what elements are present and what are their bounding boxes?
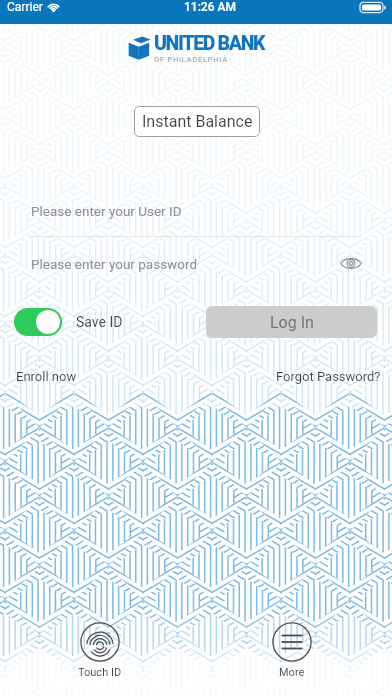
button[interactable]: More — [268, 622, 316, 679]
staticText: Instant Balance — [142, 112, 253, 131]
staticText: Touch ID — [78, 666, 122, 679]
staticText: Enroll now — [16, 369, 77, 384]
staticText: More — [279, 666, 305, 679]
staticText: Forgot Password? — [276, 369, 381, 384]
button[interactable]: Show password — [337, 249, 365, 277]
staticText: Please enter your User ID — [31, 203, 182, 219]
staticText: 11:26 AM — [184, 0, 236, 14]
staticText: Save ID — [76, 314, 123, 330]
staticText: Carrier — [7, 0, 43, 14]
button[interactable]: Please enter your password — [31, 256, 331, 282]
button[interactable]: Log In — [206, 306, 377, 338]
staticText: Log In — [270, 313, 314, 332]
staticText: OF PHILADELPHIA — [154, 55, 228, 64]
button[interactable]: Save ID — [14, 308, 62, 336]
button[interactable]: Instant Balance — [134, 106, 260, 137]
staticText: UNITED BANK — [154, 32, 265, 55]
button[interactable]: Please enter your User ID — [31, 203, 361, 229]
staticText: Please enter your password — [31, 256, 198, 272]
button[interactable]: Enroll now — [14, 367, 79, 386]
button[interactable]: Forgot Password? — [274, 367, 383, 386]
button[interactable]: Touch ID — [76, 622, 124, 679]
